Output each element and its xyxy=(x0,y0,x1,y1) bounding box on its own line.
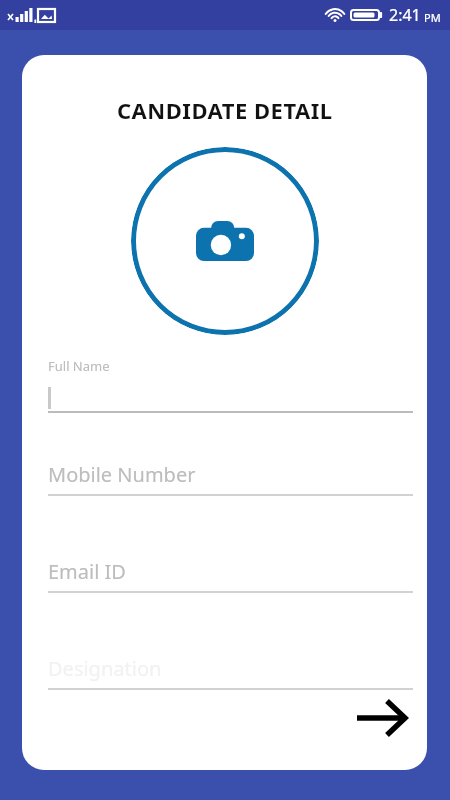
button[interactable]: Email ID xyxy=(22,558,427,593)
button[interactable]: Add photo xyxy=(131,147,319,335)
staticText: Email ID xyxy=(48,558,126,585)
staticText: Mobile Number xyxy=(48,461,196,488)
staticText: Full Name xyxy=(48,357,110,375)
button[interactable]: Next xyxy=(349,686,413,750)
button[interactable]: Designation xyxy=(22,655,427,690)
button[interactable]: Mobile Number xyxy=(22,461,427,496)
button[interactable]: Full Name xyxy=(22,357,427,413)
staticText: Designation xyxy=(48,655,162,682)
staticText: PM xyxy=(424,10,441,25)
staticText: 2:41 xyxy=(389,4,421,26)
staticText: CANDIDATE DETAIL xyxy=(117,95,333,125)
